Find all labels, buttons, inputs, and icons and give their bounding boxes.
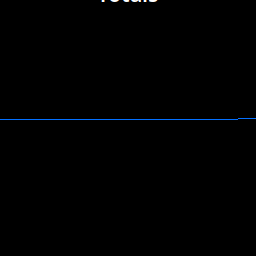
staticText: Totals — [97, 0, 159, 8]
